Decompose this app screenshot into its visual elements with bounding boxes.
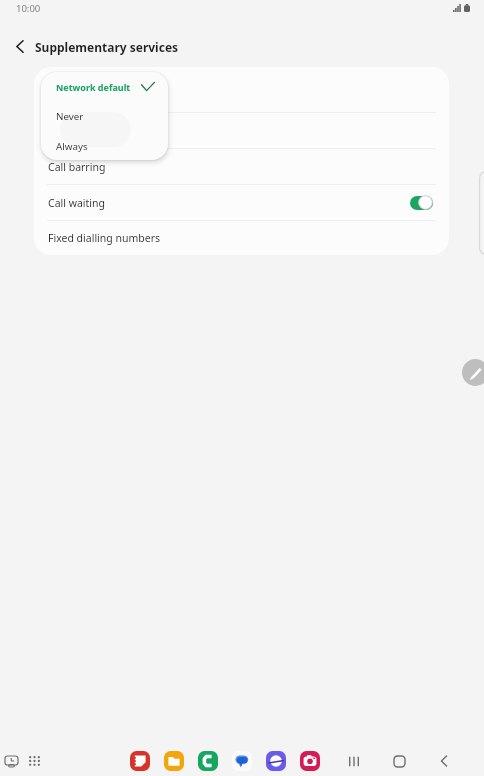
staticText: Call barring <box>48 160 106 174</box>
button[interactable]: Home <box>385 747 413 775</box>
button[interactable]: Messages <box>232 751 252 771</box>
button[interactable]: My Files <box>164 751 184 771</box>
button[interactable]: Camera <box>300 751 320 771</box>
staticText: Caller ID <box>48 83 91 97</box>
button[interactable]: Call forwarding <box>34 113 449 148</box>
staticText: Never <box>56 110 84 123</box>
button[interactable]: Network default <box>41 72 168 101</box>
staticText: Always <box>56 140 88 153</box>
button[interactable]: Phone <box>198 751 218 771</box>
button[interactable]: Back <box>430 747 458 775</box>
staticText: Network default <box>56 81 131 93</box>
button[interactable]: Samsung Notes <box>130 751 150 771</box>
button[interactable]: Always <box>41 132 168 160</box>
button[interactable]: DeX mode <box>0 748 24 774</box>
button[interactable]: Apps <box>21 748 47 774</box>
staticText: Fixed dialling numbers <box>48 231 161 245</box>
staticText: 10:00 <box>16 2 41 15</box>
button[interactable]: Call barring <box>34 149 449 184</box>
button[interactable]: Caller ID <box>34 67 449 112</box>
button[interactable]: Edit <box>462 359 484 386</box>
button[interactable]: Internet <box>266 751 286 771</box>
staticText: Call waiting <box>48 196 105 210</box>
button[interactable]: Call waiting <box>34 185 449 220</box>
staticText: Supplementary services <box>35 39 179 55</box>
button[interactable]: Never <box>41 101 168 131</box>
button[interactable]: Recent apps <box>340 747 368 775</box>
button[interactable]: Fixed dialling numbers <box>34 221 449 255</box>
button[interactable]: Back <box>3 29 37 63</box>
